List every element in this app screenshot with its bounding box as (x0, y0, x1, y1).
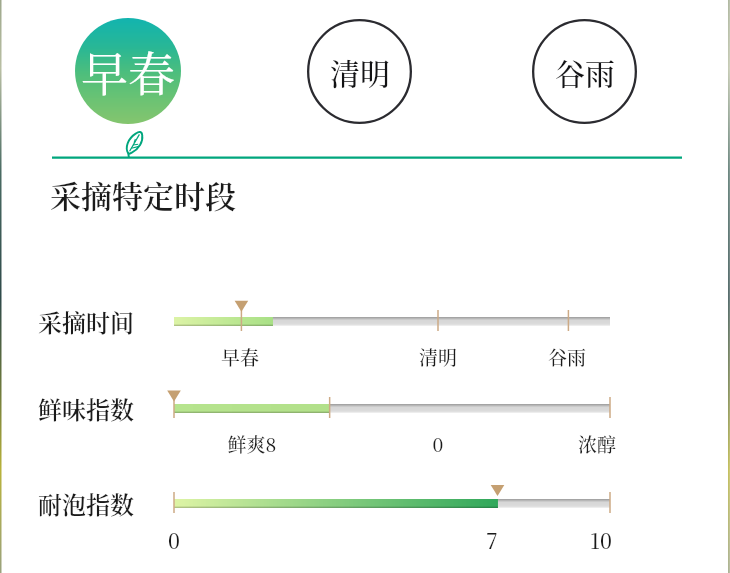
button[interactable]: 鲜味指数 (38, 391, 134, 425)
staticText: 早春 (180, 343, 300, 370)
staticText: 采摘特定时段 (50, 172, 236, 217)
button[interactable]: 谷雨 (532, 19, 637, 124)
staticText: 0 (114, 525, 234, 555)
staticText: 耐泡指数 (38, 486, 134, 520)
staticText: 7 (432, 525, 552, 555)
staticText: 清明 (330, 50, 390, 93)
staticText: 浓醇 (537, 430, 657, 457)
other: Tea leaf (123, 130, 145, 157)
staticText: 鲜爽8 (192, 430, 312, 457)
button[interactable]: 采摘特定时段 (50, 172, 236, 217)
staticText: 谷雨 (507, 343, 627, 370)
button[interactable]: 早春 (75, 18, 181, 124)
button[interactable]: 清明 (307, 19, 412, 124)
staticText: 鲜味指数 (38, 391, 134, 425)
staticText: 采摘时间 (38, 304, 134, 338)
button[interactable]: 采摘时间 (38, 304, 134, 338)
staticText: 清明 (378, 343, 498, 370)
staticText: 谷雨 (555, 50, 615, 93)
staticText: 0 (378, 430, 498, 457)
staticText: 10 (541, 525, 661, 555)
button[interactable]: 耐泡指数 (38, 486, 134, 520)
staticText: 早春 (81, 37, 175, 105)
